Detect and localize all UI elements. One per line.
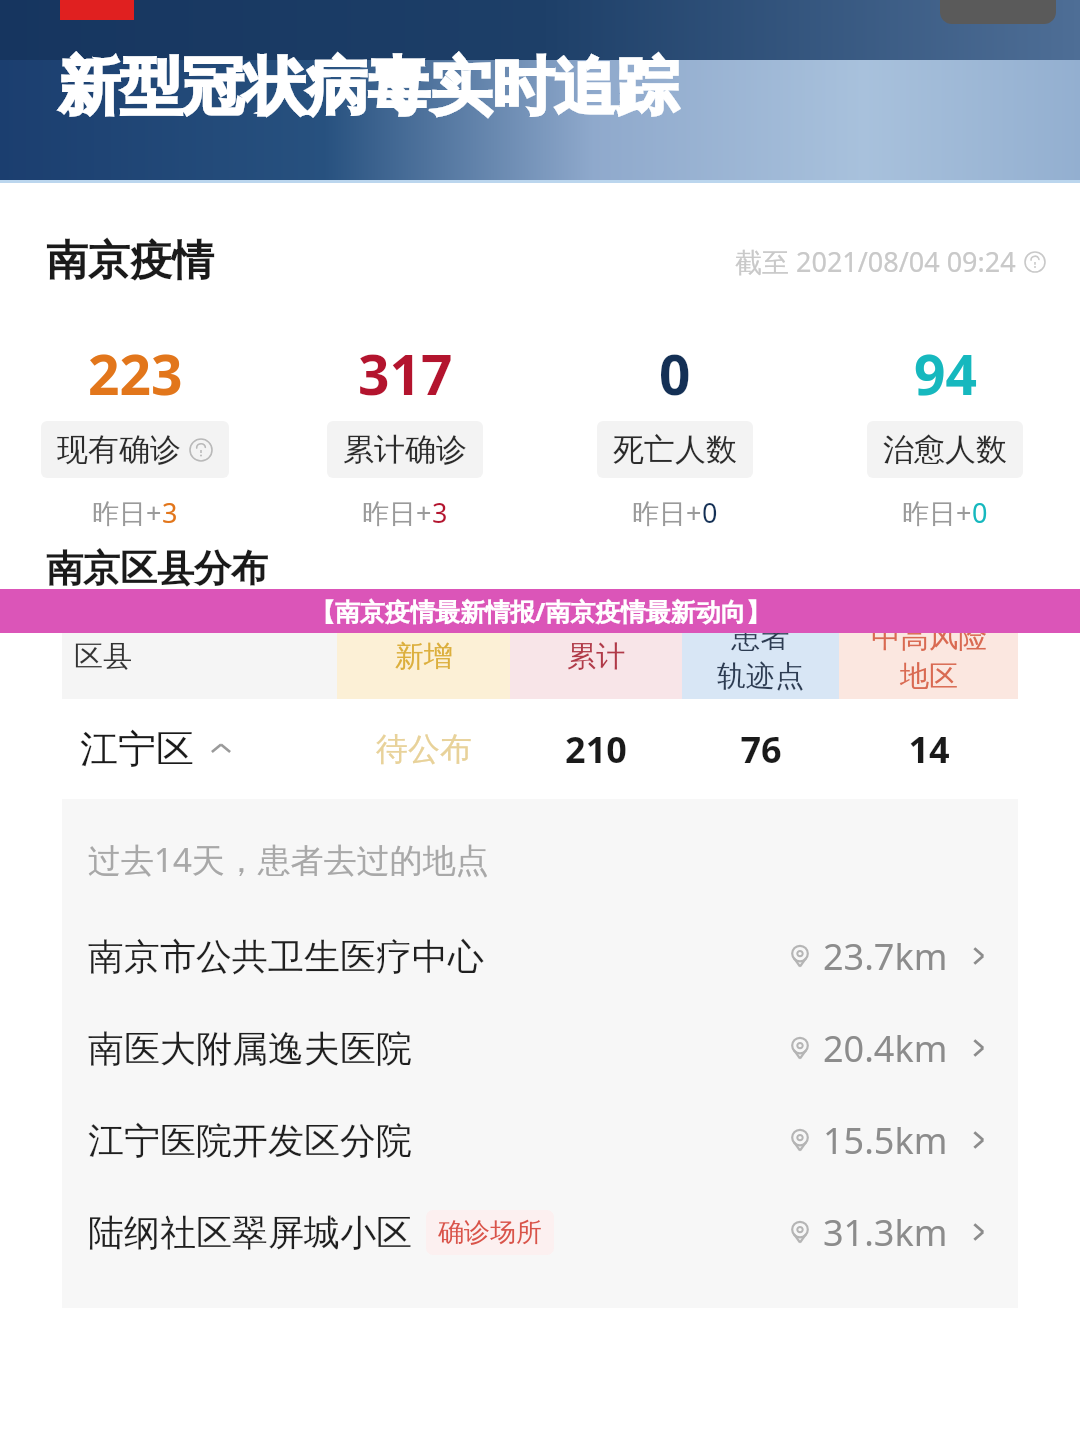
staticText: 江宁医院开发区分院 (88, 1118, 412, 1163)
staticText: 江宁区 (80, 725, 194, 773)
staticText: 76 (740, 725, 782, 774)
other: 说明 (1024, 251, 1046, 273)
staticText: 317 (358, 336, 453, 411)
staticText: 15.5km (823, 1116, 948, 1165)
staticText: 现有确诊 (57, 430, 181, 469)
staticText: 确诊场所 (438, 1216, 542, 1249)
other: 查看详情 (966, 1035, 992, 1061)
staticText: 20.4km (823, 1024, 948, 1073)
staticText: 过去14天，患者去过的地点 (88, 837, 489, 882)
other: 查看详情 (966, 943, 992, 969)
staticText: 14 (908, 725, 950, 774)
staticText: 新增 (395, 638, 453, 675)
staticText: 死亡人数 (613, 430, 737, 469)
other: 查看详情 (966, 1127, 992, 1153)
button[interactable]: 切换城市 南京 (940, 0, 1056, 24)
staticText: 31.3km (823, 1208, 948, 1257)
staticText: 昨日+ (632, 494, 702, 531)
staticText: 南京区县分布 (46, 545, 268, 592)
staticText: 南京市公共卫生医疗中心 (88, 934, 484, 979)
button[interactable]: 累计确诊 (327, 421, 483, 478)
staticText: 3 (162, 494, 178, 531)
staticText: 累计确诊 (343, 430, 467, 469)
staticText: 南京疫情 (46, 235, 214, 288)
staticText: 治愈人数 (883, 430, 1007, 469)
staticText: 截至 2021/08/04 09:24 (735, 243, 1016, 280)
other: 查看详情 (966, 1219, 992, 1245)
button[interactable]: 陆纲社区翠屏城小区 (62, 1186, 1018, 1278)
staticText: 待公布 (376, 729, 472, 769)
staticText: 南医大附属逸夫医院 (88, 1026, 412, 1071)
staticText: 累计 (567, 638, 625, 675)
staticText: 210 (565, 725, 627, 774)
staticText: 0 (972, 494, 988, 531)
staticText: 223 (88, 336, 183, 411)
staticText: 新型冠状病毒实时追踪 (58, 48, 678, 126)
button[interactable]: 南京市公共卫生医疗中心 (62, 910, 1018, 1002)
staticText: 昨日+ (902, 494, 972, 531)
other: 说明 (189, 438, 213, 462)
staticText: 昨日+ (362, 494, 432, 531)
staticText: 昨日+ (92, 494, 162, 531)
staticText: 94 (914, 336, 977, 411)
button[interactable]: 死亡人数 (597, 421, 753, 478)
staticText: 【南京疫情最新情报/南京疫情最新动向】 (310, 594, 771, 628)
button[interactable]: 江宁区 (62, 699, 1018, 799)
staticText: 3 (432, 494, 448, 531)
other: 收起 (208, 736, 234, 762)
staticText: 区县 (74, 638, 132, 675)
button[interactable]: 现有确诊 (41, 421, 229, 478)
button[interactable]: 治愈人数 (867, 421, 1023, 478)
staticText: 0 (659, 336, 691, 411)
staticText: 中高风险 地区 (871, 619, 987, 695)
button[interactable]: 南医大附属逸夫医院 (62, 1002, 1018, 1094)
staticText: 0 (702, 494, 718, 531)
staticText: 患者 轨迹点 (717, 619, 804, 695)
button[interactable]: 江宁医院开发区分院 (62, 1094, 1018, 1186)
staticText: 23.7km (823, 932, 948, 981)
staticText: 陆纲社区翠屏城小区 (88, 1210, 412, 1255)
